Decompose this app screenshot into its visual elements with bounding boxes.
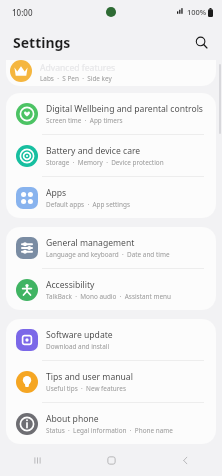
button[interactable]: Apps — [6, 177, 216, 218]
staticText: Language and keyboard · Date and time — [46, 250, 170, 259]
staticText: Settings — [13, 33, 71, 52]
staticText: Accessibility — [46, 279, 95, 291]
button[interactable]: Digital Wellbeing and parental controls — [6, 93, 216, 134]
button[interactable]: Accessibility — [6, 269, 216, 310]
staticText: Screen time · App timers — [46, 116, 123, 125]
staticText: 100% — [187, 7, 207, 17]
staticText: TalkBack · Mono audio · Assistant menu — [46, 292, 171, 301]
staticText: Apps — [46, 187, 67, 199]
staticText: Labs · S Pen · Side key — [40, 74, 112, 83]
button[interactable]: General management — [6, 227, 216, 268]
staticText: General management — [46, 237, 135, 249]
button[interactable]: About phone — [6, 403, 216, 444]
staticText: Status · Legal information · Phone name — [46, 426, 173, 435]
button[interactable]: Tips and user manual — [6, 361, 216, 402]
staticText: Useful tips · New features — [46, 384, 126, 393]
staticText: Digital Wellbeing and parental controls — [46, 103, 203, 115]
button[interactable]: Battery and device care — [6, 135, 216, 176]
staticText: Storage · Memory · Device protection — [46, 158, 164, 167]
staticText: Download and install — [46, 342, 110, 351]
staticText: Tips and user manual — [46, 371, 133, 383]
staticText: About phone — [46, 413, 99, 425]
button[interactable]: Recents — [0, 444, 74, 476]
button[interactable]: Advanced features — [6, 60, 216, 86]
staticText: Software update — [46, 329, 113, 341]
button[interactable]: Home — [74, 444, 148, 476]
button[interactable]: Software update — [6, 319, 216, 360]
button[interactable]: Search — [188, 29, 214, 55]
staticText: Default apps · App settings — [46, 200, 130, 209]
staticText: Advanced features — [40, 62, 116, 74]
staticText: Battery and device care — [46, 145, 141, 157]
staticText: 10:00 — [12, 7, 33, 18]
